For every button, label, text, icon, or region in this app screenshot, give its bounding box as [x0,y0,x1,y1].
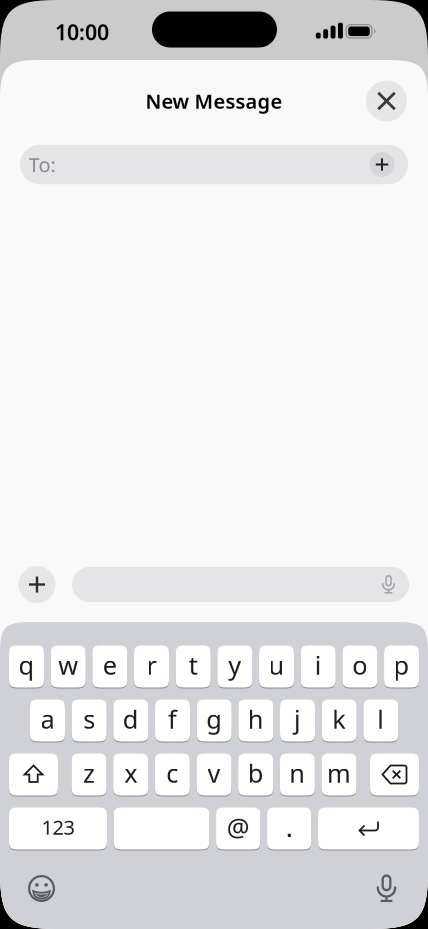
button[interactable]: 123 [9,807,107,850]
staticText: g [206,702,222,736]
staticText: o [352,648,367,682]
button[interactable]: Apps [18,566,55,603]
button[interactable]: Add Contact [369,152,394,177]
button[interactable]: j [280,699,315,742]
staticText: e [103,648,117,682]
button[interactable]: q [9,645,44,688]
staticText: c [166,756,178,790]
button[interactable]: r [134,645,169,688]
staticText: m [327,756,351,790]
button[interactable]: Dictation [364,866,408,910]
button[interactable]: l [363,699,398,742]
button[interactable]: f [155,699,190,742]
button[interactable]: Shift [9,753,58,796]
staticText: s [83,702,95,736]
button[interactable]: e [92,645,127,688]
staticText: h [248,702,264,736]
button[interactable]: y [217,645,252,688]
button[interactable]: p [384,645,419,688]
staticText: j [294,702,301,736]
button[interactable]: Close [366,80,407,121]
staticText: r [146,648,156,682]
staticText: To: [28,151,55,178]
button[interactable]: @ [216,807,260,850]
button[interactable]: i [301,645,336,688]
staticText: q [18,648,34,682]
staticText: b [248,756,264,790]
button[interactable]: b [238,753,273,796]
button[interactable]: Emoji [19,866,63,910]
staticText: 123 [41,814,74,840]
button[interactable]: n [280,753,315,796]
button[interactable]: d [113,699,148,742]
button[interactable]: Message [72,567,409,602]
button[interactable]: t [176,645,211,688]
staticText: z [83,756,95,790]
staticText: . [286,809,293,845]
button[interactable]: g [197,699,232,742]
button[interactable]: k [322,699,357,742]
staticText: w [58,648,78,682]
button[interactable]: m [321,753,356,796]
button[interactable]: w [51,645,86,688]
staticText: p [393,648,409,682]
button[interactable]: c [155,753,190,796]
button[interactable]: a [30,699,65,742]
staticText: t [189,648,198,682]
staticText: New Message [145,88,282,114]
button[interactable]: Return [318,807,419,850]
staticText: v [207,756,220,790]
staticText: k [332,702,346,736]
button[interactable]: To: [20,145,408,184]
button[interactable]: x [113,753,148,796]
staticText: i [315,648,322,682]
staticText: n [289,756,305,790]
staticText: f [168,702,177,736]
staticText: l [377,702,384,736]
staticText: u [268,648,284,682]
button[interactable]: z [71,753,106,796]
staticText: d [123,702,139,736]
button[interactable]: space [114,807,209,850]
button[interactable]: s [72,699,107,742]
staticText: @ [227,810,250,844]
staticText: a [40,702,54,736]
button[interactable]: u [259,645,294,688]
button[interactable]: . [267,807,311,850]
staticText: x [124,756,137,790]
button[interactable]: o [342,645,377,688]
button[interactable]: v [196,753,231,796]
button[interactable]: h [238,699,273,742]
staticText: 10:00 [55,18,109,46]
button[interactable]: Delete [370,753,419,796]
staticText: y [228,648,241,682]
